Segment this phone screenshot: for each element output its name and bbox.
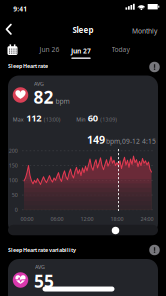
button[interactable]: Calendar [7,44,18,55]
staticText: 18:00 [110,215,123,223]
staticText: 00:00 [20,215,33,223]
staticText: Sleep Heart rate [8,62,48,70]
button[interactable]: Today [111,45,129,54]
staticText: Jun 26 [39,45,59,54]
staticText: bpm,09-12 4:15 [106,137,156,145]
staticText: AVG [35,263,45,271]
staticText: 9:41 [13,5,27,13]
staticText: 50 [12,191,18,199]
button[interactable]: Monthly [132,27,157,35]
button[interactable]: Information [149,62,159,72]
staticText: 55 [34,269,54,292]
staticText: 12:00 [80,215,93,223]
staticText: Sleep [72,25,93,35]
staticText: 150 [9,162,18,169]
button[interactable]: Chart scrubber [112,227,119,234]
staticText: 82 [33,85,53,108]
staticText: 100 [9,177,18,184]
button[interactable]: Jun 27 [71,47,91,59]
staticText: Monthly [132,27,157,35]
staticText: 200 [9,147,18,154]
staticText: 24:00 [140,215,153,223]
staticText: Jun 27 [71,47,91,55]
staticText: Min [76,116,85,123]
staticText: 60 [88,112,98,124]
staticText: 0 [15,206,18,213]
button[interactable]: Information [149,245,159,255]
button[interactable]: Back [6,24,12,35]
staticText: Max [13,116,24,123]
staticText: (13:09) [100,116,117,123]
staticText: 06:00 [50,215,63,223]
staticText: 149 [87,132,105,147]
staticText: Sleep Heart rate variability [8,246,76,254]
button[interactable]: Jun 26 [39,45,59,54]
staticText: AVG [34,80,44,87]
staticText: 112 [26,112,41,124]
staticText: bpm [55,97,69,106]
staticText: (13:00) [44,116,61,123]
staticText: Today [111,45,129,54]
